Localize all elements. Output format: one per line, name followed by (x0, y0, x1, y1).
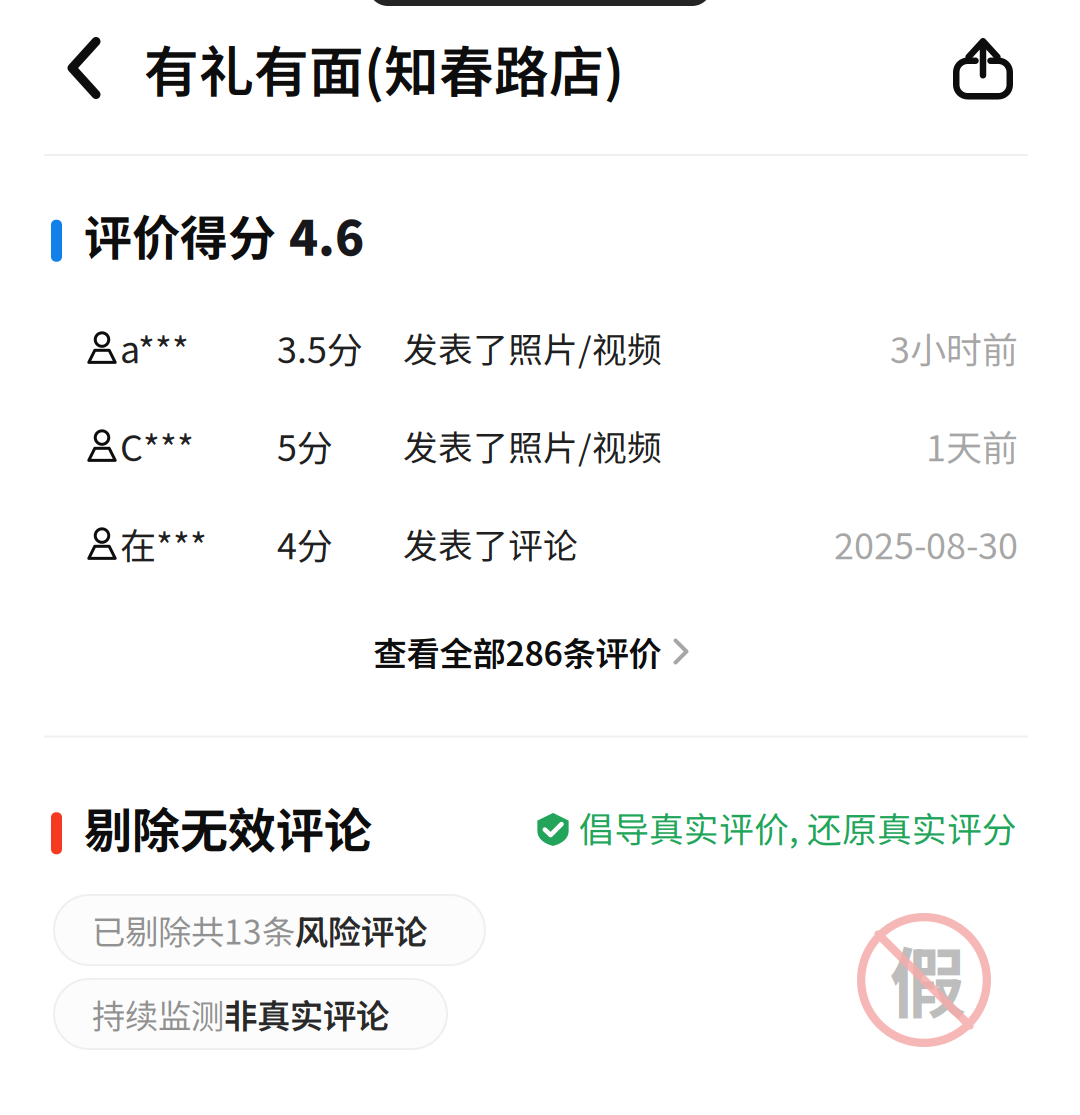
button[interactable]: Share (931, 16, 1035, 120)
staticText: 已剔除共13条 (92, 906, 295, 954)
staticText: 发表了照片/视频 (403, 322, 662, 373)
button[interactable]: a*** (0, 298, 1080, 396)
button[interactable]: 在*** (0, 494, 1080, 592)
staticText: 发表了评论 (403, 518, 578, 569)
staticText: 在*** (120, 517, 207, 569)
staticText: 发表了照片/视频 (403, 420, 662, 471)
staticText: C*** (120, 419, 194, 471)
staticText: 查看全部286条评价 (373, 627, 661, 676)
staticText: 评价得分 (84, 200, 276, 269)
staticText: 有礼有面(知春路店) (144, 28, 624, 108)
button[interactable]: 查看全部286条评价 (0, 619, 1080, 683)
staticText: a*** (120, 321, 189, 373)
staticText: 5分 (277, 419, 333, 471)
staticText: 3小时前 (890, 321, 1018, 373)
staticText: 4.6 (289, 200, 364, 269)
staticText: 风险评论 (295, 906, 427, 954)
staticText: 倡导真实评价, 还原真实评分 (579, 802, 1017, 852)
staticText: 2025-08-30 (834, 517, 1018, 569)
staticText: 3.5分 (277, 321, 363, 373)
staticText: 持续监测 (92, 990, 224, 1038)
staticText: 1天前 (926, 419, 1018, 471)
staticText: 假 (889, 922, 966, 1034)
button[interactable]: Back (36, 16, 132, 120)
staticText: 4分 (277, 517, 333, 569)
staticText: 剔除无效评论 (84, 792, 372, 862)
button[interactable]: C*** (0, 396, 1080, 494)
staticText: 非真实评论 (224, 990, 389, 1038)
